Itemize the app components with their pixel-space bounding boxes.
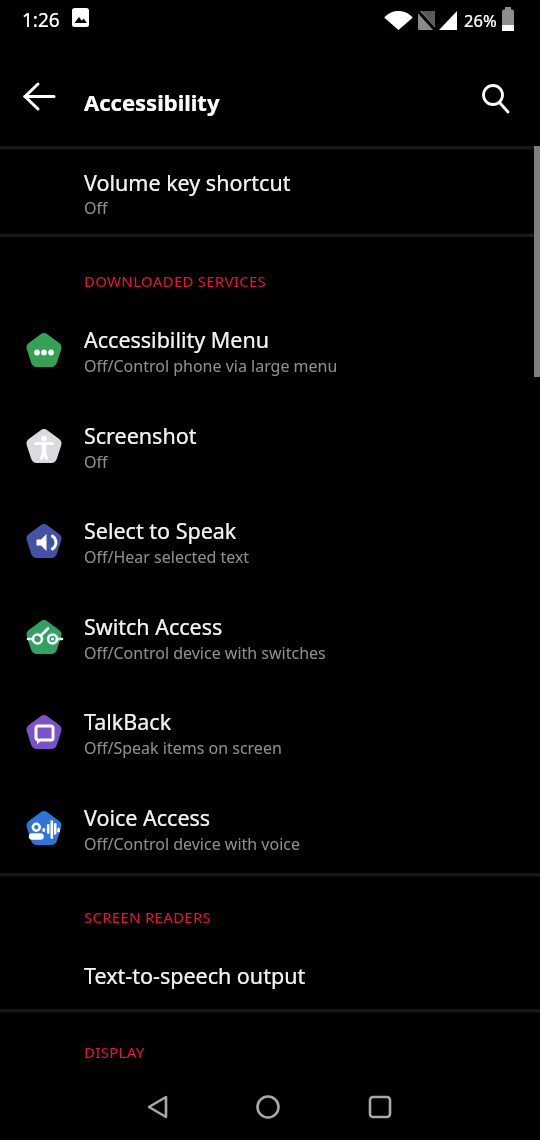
staticText: SCREEN READERS <box>84 907 212 927</box>
button[interactable]: Voice Access <box>0 782 540 878</box>
button[interactable]: Screenshot <box>0 400 540 496</box>
button[interactable]: Select to Speak <box>0 495 540 591</box>
button[interactable] <box>134 1082 184 1132</box>
staticText: Off/Speak items on screen <box>84 737 282 759</box>
staticText: Accessibility Menu <box>84 325 270 354</box>
staticText: Off/Control phone via large menu <box>84 355 338 377</box>
staticText: Select to Speak <box>84 516 237 545</box>
staticText: Text-to-speech output <box>84 961 306 990</box>
staticText: Switch Access <box>84 612 223 641</box>
staticText: Accessibility <box>84 87 220 117</box>
staticText: DISPLAY <box>84 1042 145 1062</box>
staticText: Off <box>84 197 108 219</box>
button[interactable] <box>472 77 520 125</box>
staticText: 26% <box>464 9 497 31</box>
staticText: DOWNLOADED SERVICES <box>84 271 267 291</box>
staticText: TalkBack <box>84 707 172 736</box>
button[interactable]: Switch Access <box>0 591 540 687</box>
staticText: Off <box>84 451 108 473</box>
button[interactable]: TalkBack <box>0 686 540 782</box>
staticText: Off/Control device with voice <box>84 833 301 855</box>
staticText: Volume key shortcut <box>84 168 291 197</box>
button[interactable] <box>16 77 64 125</box>
staticText: Screenshot <box>84 421 197 450</box>
staticText: Voice Access <box>84 803 211 832</box>
button[interactable]: Text-to-speech output <box>0 941 540 1009</box>
staticText: Off/Hear selected text <box>84 546 250 568</box>
button[interactable] <box>243 1082 293 1132</box>
staticText: 1:26 <box>22 7 60 33</box>
button[interactable]: Volume key shortcut <box>0 150 540 233</box>
staticText: Off/Control device with switches <box>84 642 326 664</box>
button[interactable] <box>355 1082 405 1132</box>
button[interactable]: Accessibility Menu <box>0 304 540 400</box>
